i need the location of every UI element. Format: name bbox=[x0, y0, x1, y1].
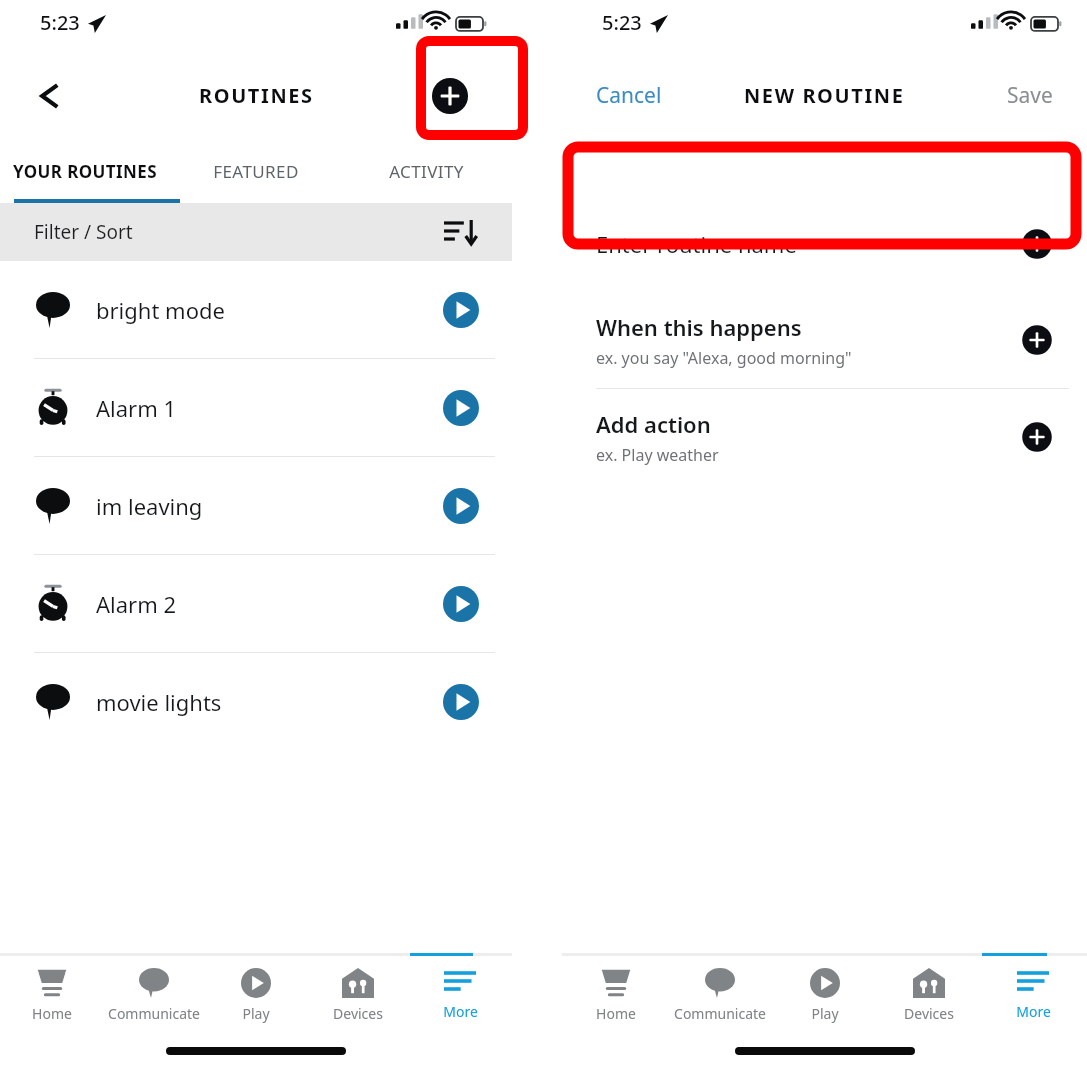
staticText: Communicate bbox=[674, 1004, 766, 1023]
button[interactable]: Communicate bbox=[670, 956, 770, 1034]
staticText: NEW ROUTINE bbox=[744, 82, 905, 109]
button[interactable]: Enter routine name bbox=[1019, 226, 1055, 262]
staticText: YOUR ROUTINES bbox=[13, 160, 157, 183]
staticText: bright mode bbox=[96, 295, 438, 325]
staticText: Communicate bbox=[108, 1004, 200, 1023]
button[interactable]: When this happens bbox=[1019, 322, 1055, 358]
staticText: Devices bbox=[333, 1004, 383, 1023]
staticText: ACTIVITY bbox=[389, 160, 464, 183]
button[interactable]: FEATURED bbox=[170, 143, 341, 199]
button[interactable]: Home bbox=[2, 956, 102, 1034]
staticText: ex. you say "Alexa, good morning" bbox=[596, 347, 852, 369]
staticText: Save bbox=[1007, 81, 1053, 110]
button[interactable]: Add routine bbox=[428, 74, 472, 118]
button[interactable]: im leaving bbox=[0, 457, 512, 554]
staticText: Filter / Sort bbox=[34, 219, 444, 245]
button[interactable]: More bbox=[983, 956, 1083, 1034]
button[interactable]: Filter / Sort bbox=[0, 203, 512, 261]
staticText: Play bbox=[811, 1004, 839, 1023]
staticText: Home bbox=[32, 1004, 72, 1023]
button[interactable]: movie lights bbox=[0, 653, 512, 750]
staticText: More bbox=[1016, 1002, 1051, 1021]
button[interactable]: Add action bbox=[562, 389, 1087, 485]
staticText: Cancel bbox=[596, 81, 662, 110]
staticText: 5:23 bbox=[602, 9, 642, 36]
button[interactable]: Play routine bbox=[438, 385, 484, 431]
staticText: Home bbox=[596, 1004, 636, 1023]
button[interactable]: When this happens bbox=[562, 292, 1087, 388]
button[interactable]: Communicate bbox=[104, 956, 204, 1034]
button[interactable]: Home bbox=[566, 956, 666, 1034]
staticText: Add action bbox=[596, 409, 711, 439]
button[interactable]: Back bbox=[22, 68, 78, 124]
button[interactable]: Enter routine name bbox=[562, 198, 1087, 290]
button[interactable]: Play routine bbox=[438, 483, 484, 529]
button[interactable]: YOUR ROUTINES bbox=[0, 143, 170, 199]
staticText: movie lights bbox=[96, 687, 438, 717]
button[interactable]: Cancel bbox=[584, 73, 674, 118]
staticText: When this happens bbox=[596, 312, 802, 342]
staticText: ex. Play weather bbox=[596, 444, 719, 466]
button[interactable]: Save bbox=[995, 73, 1065, 118]
staticText: Alarm 1 bbox=[96, 393, 438, 423]
staticText: ROUTINES bbox=[199, 82, 314, 109]
staticText: 5:23 bbox=[40, 9, 80, 36]
button[interactable]: Play bbox=[775, 956, 875, 1034]
staticText: More bbox=[443, 1002, 478, 1021]
staticText: Devices bbox=[904, 1004, 954, 1023]
button[interactable]: Add action bbox=[1019, 419, 1055, 455]
button[interactable]: Devices bbox=[879, 956, 979, 1034]
button[interactable]: Play routine bbox=[438, 581, 484, 627]
staticText: Alarm 2 bbox=[96, 589, 438, 619]
button[interactable]: Play routine bbox=[438, 287, 484, 333]
staticText: im leaving bbox=[96, 491, 438, 521]
button[interactable]: Alarm 2 bbox=[0, 555, 512, 652]
button[interactable]: Play routine bbox=[438, 679, 484, 725]
staticText: Play bbox=[242, 1004, 270, 1023]
button[interactable]: Alarm 1 bbox=[0, 359, 512, 456]
button[interactable]: More bbox=[410, 956, 510, 1034]
staticText: Enter routine name bbox=[596, 229, 797, 259]
button[interactable]: ACTIVITY bbox=[341, 143, 512, 199]
button[interactable]: Devices bbox=[308, 956, 408, 1034]
button[interactable]: bright mode bbox=[0, 261, 512, 358]
staticText: FEATURED bbox=[213, 160, 299, 183]
button[interactable]: Play bbox=[206, 956, 306, 1034]
